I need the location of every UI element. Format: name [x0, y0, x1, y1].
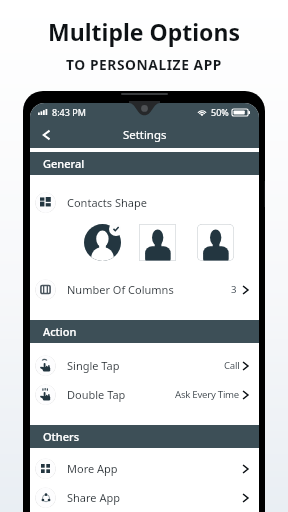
staticText: Action [43, 324, 77, 339]
staticText: TO PERSONALIZE APP [66, 55, 222, 74]
staticText: Number Of Columns [67, 282, 174, 297]
staticText: Settings [123, 127, 167, 143]
button[interactable]: Number Of Columns [30, 279, 259, 300]
staticText: Single Tap [67, 358, 120, 373]
staticText: 50% [211, 106, 229, 118]
button[interactable]: Single Tap [30, 351, 259, 380]
button[interactable]: Back [37, 125, 56, 144]
staticText: Call [224, 359, 240, 372]
staticText: Multiple Options [48, 16, 240, 47]
staticText: Others [43, 429, 80, 444]
button[interactable]: Double Tap [30, 380, 259, 409]
staticText: Contacts Shape [67, 195, 147, 210]
staticText: General [43, 156, 85, 171]
staticText: Share App [67, 490, 120, 505]
staticText: Ask Every Time [175, 388, 240, 401]
button[interactable]: More App [30, 454, 259, 483]
staticText: Double Tap [67, 387, 126, 402]
button[interactable]: Share App [30, 483, 259, 512]
staticText: More App [67, 461, 118, 476]
staticText: 8:43 PM [52, 106, 86, 118]
staticText: 3 [231, 283, 237, 296]
button[interactable]: Contacts Shape [30, 192, 259, 213]
